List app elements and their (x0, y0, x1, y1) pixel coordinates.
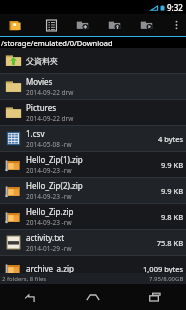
button[interactable]: Movies (0, 74, 186, 99)
button[interactable]: Move to folder (136, 14, 156, 36)
staticText: 2014-09-22 drw (26, 88, 74, 97)
staticText: 2014-05-08 -rw (26, 140, 72, 149)
button[interactable]: Recent apps (124, 284, 186, 310)
staticText: archive_a.zip (26, 263, 74, 274)
staticText: 父資料夾 (26, 56, 58, 66)
staticText: 7.95/8.00GB (149, 275, 184, 283)
staticText: 2014-09-23 -rw (26, 166, 72, 175)
button[interactable]: Hello_Zip(1).zip (0, 152, 186, 177)
staticText: 2 folders, 8 files (2, 275, 47, 283)
button[interactable]: New folder (72, 14, 92, 36)
button[interactable]: 父資料夾 (0, 48, 186, 73)
button[interactable]: List view (41, 14, 61, 36)
button[interactable]: Hello_Zip(2).zip (0, 178, 186, 203)
staticText: 75.8 KB (156, 238, 183, 248)
button[interactable]: archive_a.zip (0, 256, 186, 281)
staticText: 4 bytes (157, 134, 183, 144)
staticText: activity.txt (26, 232, 65, 243)
button[interactable]: Hello_Zip.zip (0, 204, 186, 229)
staticText: 2014-09-22 drw (26, 114, 74, 123)
staticText: 2014-01-29 -rw (26, 244, 72, 253)
button[interactable]: Home (62, 284, 124, 310)
button[interactable]: More options (168, 14, 184, 36)
staticText: 1,009 bytes (143, 264, 183, 274)
button[interactable]: Back (0, 284, 62, 310)
button[interactable]: Copy to folder (104, 14, 124, 36)
staticText: 9.9 KB (160, 186, 183, 196)
staticText: /storage/emulated/0/Download (1, 38, 113, 48)
staticText: Movies (26, 76, 53, 87)
staticText: 9:32 (167, 2, 183, 13)
staticText: Hello_Zip(1).zip (26, 154, 83, 165)
staticText: 9.9 KB (160, 160, 183, 170)
staticText: Hello_Zip.zip (26, 206, 74, 217)
button[interactable]: activity.txt (0, 230, 186, 255)
staticText: 2014-09-23 -rw (26, 192, 72, 201)
button[interactable]: 1.csv (0, 126, 186, 151)
button[interactable]: Pictures (0, 100, 186, 125)
staticText: Pictures (26, 102, 57, 113)
staticText: Hello_Zip(2).zip (26, 180, 83, 191)
button[interactable]: App home (0, 14, 30, 36)
staticText: 1.csv (26, 128, 45, 139)
staticText: 2014-09-23 -rw (26, 218, 72, 227)
staticText: 9.8 KB (160, 212, 183, 222)
